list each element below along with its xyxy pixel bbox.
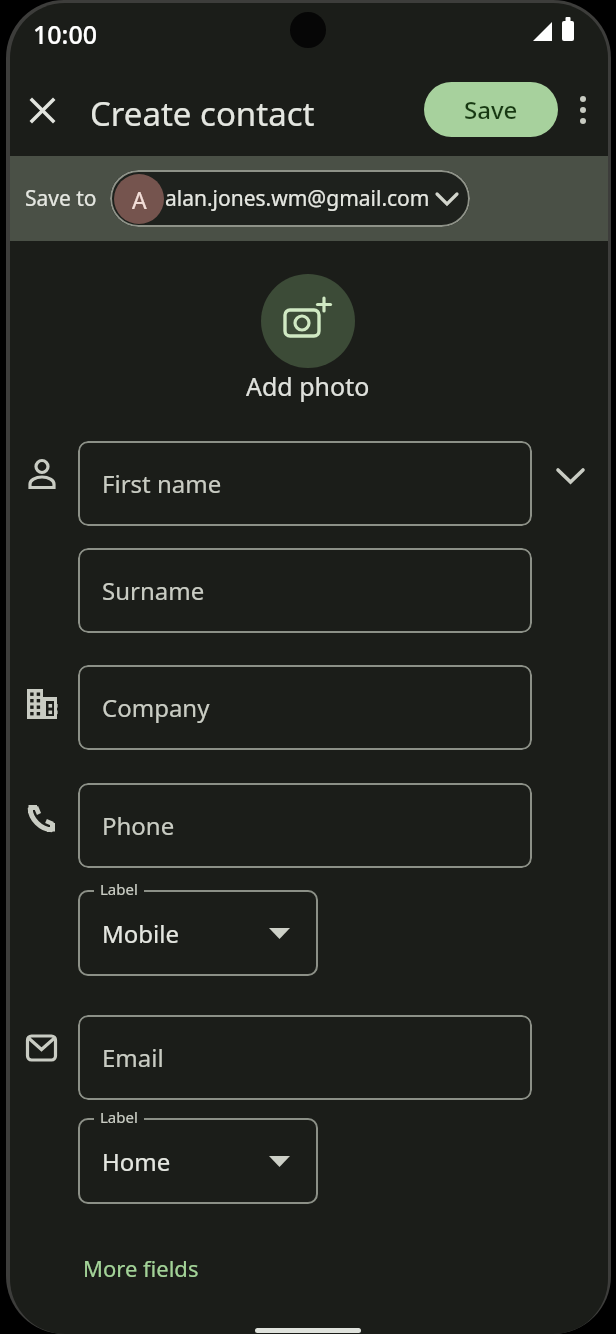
staticText: A: [132, 184, 147, 215]
button[interactable]: More fields: [83, 1253, 199, 1283]
staticText: More fields: [83, 1253, 199, 1283]
staticText: 10:00: [33, 17, 98, 51]
button[interactable]: First name: [78, 441, 532, 526]
staticText: Surname: [102, 574, 205, 607]
staticText: Label: [100, 879, 138, 899]
button[interactable]: Save: [424, 82, 558, 137]
staticText: Mobile: [102, 917, 179, 950]
staticText: Company: [102, 691, 210, 724]
button[interactable]: Phone: [78, 783, 532, 868]
button[interactable]: [261, 274, 355, 368]
staticText: alan.jones.wm@gmail.com: [165, 184, 430, 213]
staticText: Save to: [25, 184, 97, 213]
button[interactable]: Mobile: [78, 890, 318, 976]
staticText: Phone: [102, 809, 175, 842]
button[interactable]: [22, 90, 62, 130]
button[interactable]: Company: [78, 665, 532, 750]
staticText: First name: [102, 467, 222, 500]
staticText: Create contact: [90, 91, 315, 136]
button[interactable]: Home: [78, 1118, 318, 1204]
staticText: Save: [464, 93, 518, 126]
staticText: Add photo: [246, 369, 370, 403]
button[interactable]: [543, 449, 597, 503]
button[interactable]: Surname: [78, 548, 532, 633]
staticText: Home: [102, 1145, 171, 1178]
staticText: Label: [100, 1107, 138, 1127]
button[interactable]: [563, 90, 603, 130]
button[interactable]: A: [110, 170, 470, 227]
staticText: Email: [102, 1041, 164, 1074]
button[interactable]: Email: [78, 1015, 532, 1100]
